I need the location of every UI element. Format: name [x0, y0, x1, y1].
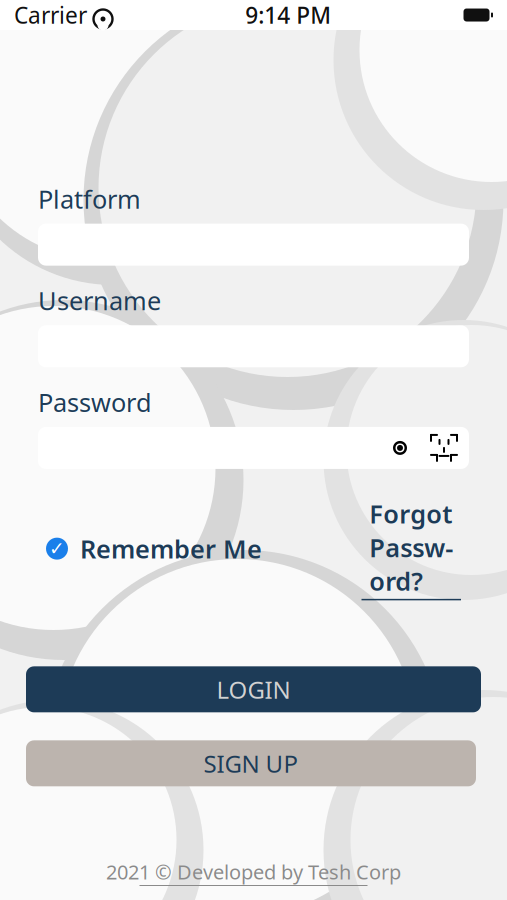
staticText: Remember Me: [80, 532, 262, 565]
staticText: SIGN UP: [203, 747, 298, 779]
staticText: ✓: [49, 538, 65, 559]
button[interactable]: Text field: [26, 224, 481, 266]
button[interactable]: 2021 © Developed by Tesh Corp: [106, 858, 401, 900]
staticText: Platform: [38, 182, 141, 216]
staticText: 9:14 PM: [245, 0, 331, 30]
staticText: Forgot Password?: [369, 497, 453, 598]
staticText: LOGIN: [216, 673, 290, 705]
staticText: 2021 © Developed by Tesh Corp: [106, 858, 401, 885]
button[interactable]: ✓: [46, 526, 262, 571]
button[interactable]: Password field: [26, 427, 481, 469]
staticText: Password: [38, 385, 152, 419]
staticText: Username: [38, 284, 161, 317]
button[interactable]: LOGIN: [26, 666, 481, 712]
button[interactable]: SIGN UP: [26, 740, 481, 786]
button[interactable]: Forgot Password?: [361, 491, 461, 606]
staticText: Carrier: [14, 0, 87, 30]
